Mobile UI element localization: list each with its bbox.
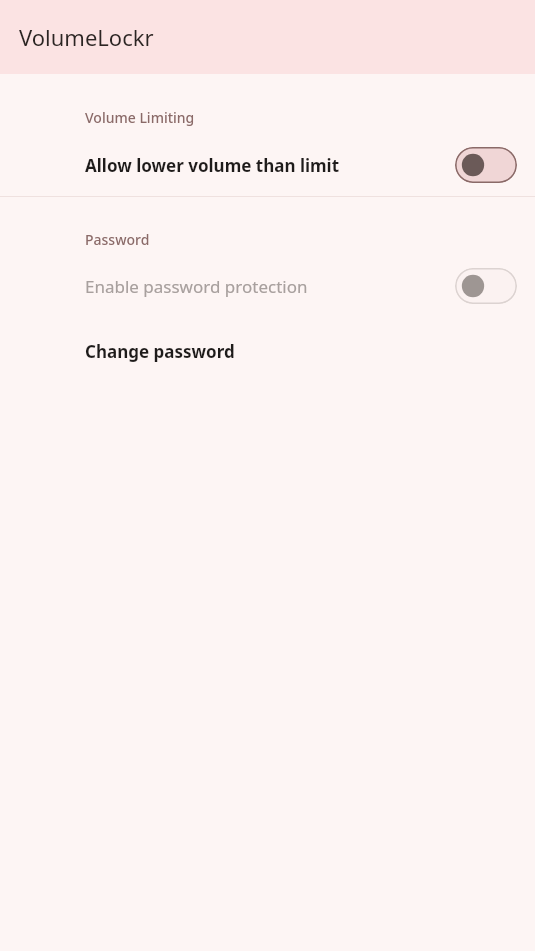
button[interactable]: Change password [0,332,535,371]
button[interactable]: Toggle, disabled [455,268,517,304]
button[interactable]: Allow lower volume than limit [0,147,535,183]
button[interactable]: Enable password protection [0,268,535,304]
staticText: Volume Limiting [85,108,195,127]
staticText: Password [85,230,150,249]
staticText: Allow lower volume than limit [85,154,443,177]
button[interactable]: Toggle on [455,147,517,183]
staticText: VolumeLockr [19,22,154,52]
staticText: Change password [85,340,235,363]
staticText: Enable password protection [85,275,443,298]
